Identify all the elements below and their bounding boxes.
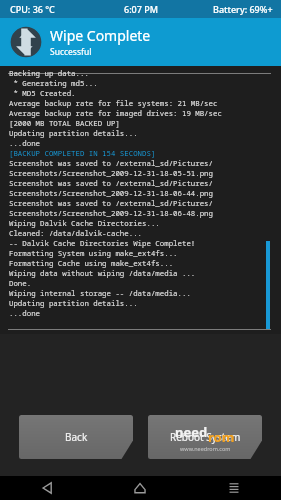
staticText: Screenshot was saved to /external_sd/Pic…: [9, 178, 213, 188]
staticText: rom: [208, 428, 235, 446]
button[interactable]: Back: [19, 415, 133, 459]
staticText: Reboot System: [170, 430, 241, 444]
staticText: Screenshots/Screenshot_2009-12-31-18-06-…: [9, 188, 213, 198]
staticText: ...done: [9, 308, 41, 318]
staticText: Wipe Complete: [50, 26, 151, 45]
staticText: Backing up data...: [9, 68, 89, 78]
button[interactable]: Recent apps: [187, 476, 281, 500]
staticText: -- Dalvik Cache Directories Wipe Complet…: [9, 238, 196, 248]
staticText: * MD5 Created.: [9, 88, 76, 98]
staticText: Screenshots/Screenshot_2009-12-31-18-06-…: [9, 208, 213, 218]
staticText: Back: [65, 430, 88, 444]
staticText: Screenshot was saved to /external_sd/Pic…: [9, 198, 213, 208]
staticText: Wiping data without wiping /data/media .…: [9, 268, 196, 278]
staticText: Updating partition details...: [9, 298, 138, 308]
staticText: 6:07 PM: [124, 3, 158, 15]
staticText: Formatting Cache using make_ext4fs...: [9, 258, 174, 268]
staticText: ...done: [9, 138, 41, 148]
staticText: Updating partition details...: [9, 128, 138, 138]
staticText: Done.: [9, 278, 32, 288]
staticText: Cleaned: /data/dalvik-cache...: [9, 228, 143, 238]
button[interactable]: Reboot System: [148, 415, 262, 459]
staticText: www.needrom.com: [180, 445, 231, 452]
staticText: Average backup rate for imaged drives: 1…: [9, 108, 222, 118]
staticText: [2000 MB TOTAL BACKED UP]: [9, 118, 120, 128]
button[interactable]: Back: [0, 476, 93, 500]
staticText: Screenshots/Screenshot_2009-12-31-18-05-…: [9, 168, 213, 178]
button[interactable]: Home: [93, 476, 187, 500]
staticText: * Generating md5...: [9, 78, 98, 88]
staticText: Successful: [50, 46, 92, 58]
staticText: CPU: 36 °C: [10, 3, 55, 15]
staticText: [BACKUP COMPLETED IN 154 SECONDS]: [9, 148, 156, 158]
staticText: Screenshot was saved to /external_sd/Pic…: [9, 158, 213, 168]
staticText: Formatting System using make_ext4fs...: [9, 248, 178, 258]
staticText: Battery: 69%+: [213, 3, 273, 15]
staticText: Wiping internal storage -- /data/media..…: [9, 288, 191, 298]
staticText: need: [175, 423, 208, 441]
staticText: Wiping Dalvik Cache Directories...: [9, 218, 160, 228]
staticText: Average backup rate for file systems: 21…: [9, 98, 218, 108]
